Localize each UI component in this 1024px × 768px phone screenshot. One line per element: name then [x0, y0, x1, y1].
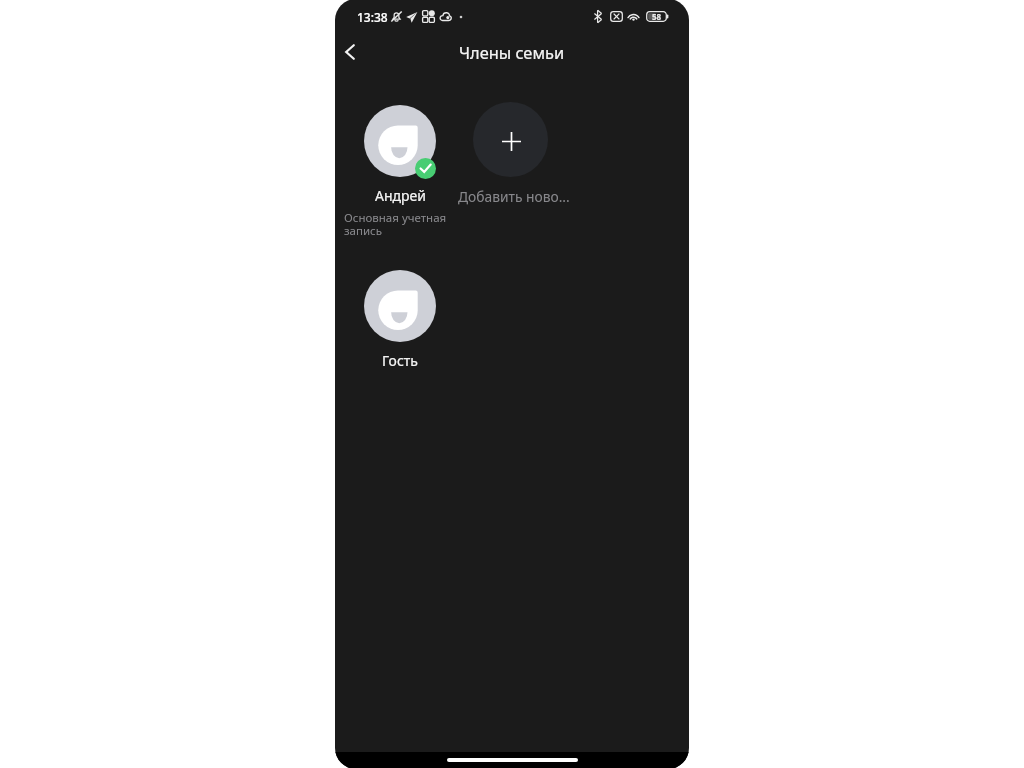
staticText: Добавить ново...: [458, 187, 570, 206]
button[interactable]: Андрей: [346, 105, 454, 238]
staticText: Члены семьи: [459, 41, 565, 63]
button[interactable]: Добавить ново...: [450, 102, 570, 206]
staticText: Основная учетная запись: [344, 210, 452, 238]
staticText: 13:38: [357, 9, 388, 25]
button[interactable]: Гость: [346, 270, 454, 370]
staticText: Гость: [382, 351, 418, 370]
button[interactable]: Back: [335, 32, 370, 72]
staticText: 58: [652, 11, 662, 22]
staticText: Андрей: [375, 186, 426, 205]
